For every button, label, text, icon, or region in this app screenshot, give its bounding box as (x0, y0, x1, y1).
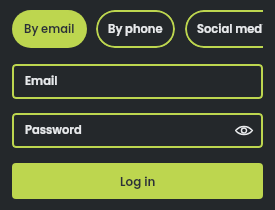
staticText: Password (25, 122, 82, 138)
staticText: Log in (120, 173, 156, 190)
button[interactable]: Password (12, 113, 263, 148)
staticText: By phone (108, 21, 163, 37)
button[interactable]: By phone (96, 10, 175, 48)
button[interactable]: Show password (233, 120, 255, 142)
button[interactable]: Log in (12, 163, 263, 199)
button[interactable]: Social media (185, 10, 263, 48)
staticText: By email (24, 21, 75, 37)
button[interactable]: Email (12, 64, 263, 99)
staticText: Social media (197, 21, 263, 37)
staticText: Email (25, 73, 58, 89)
button[interactable]: By email (12, 10, 87, 48)
